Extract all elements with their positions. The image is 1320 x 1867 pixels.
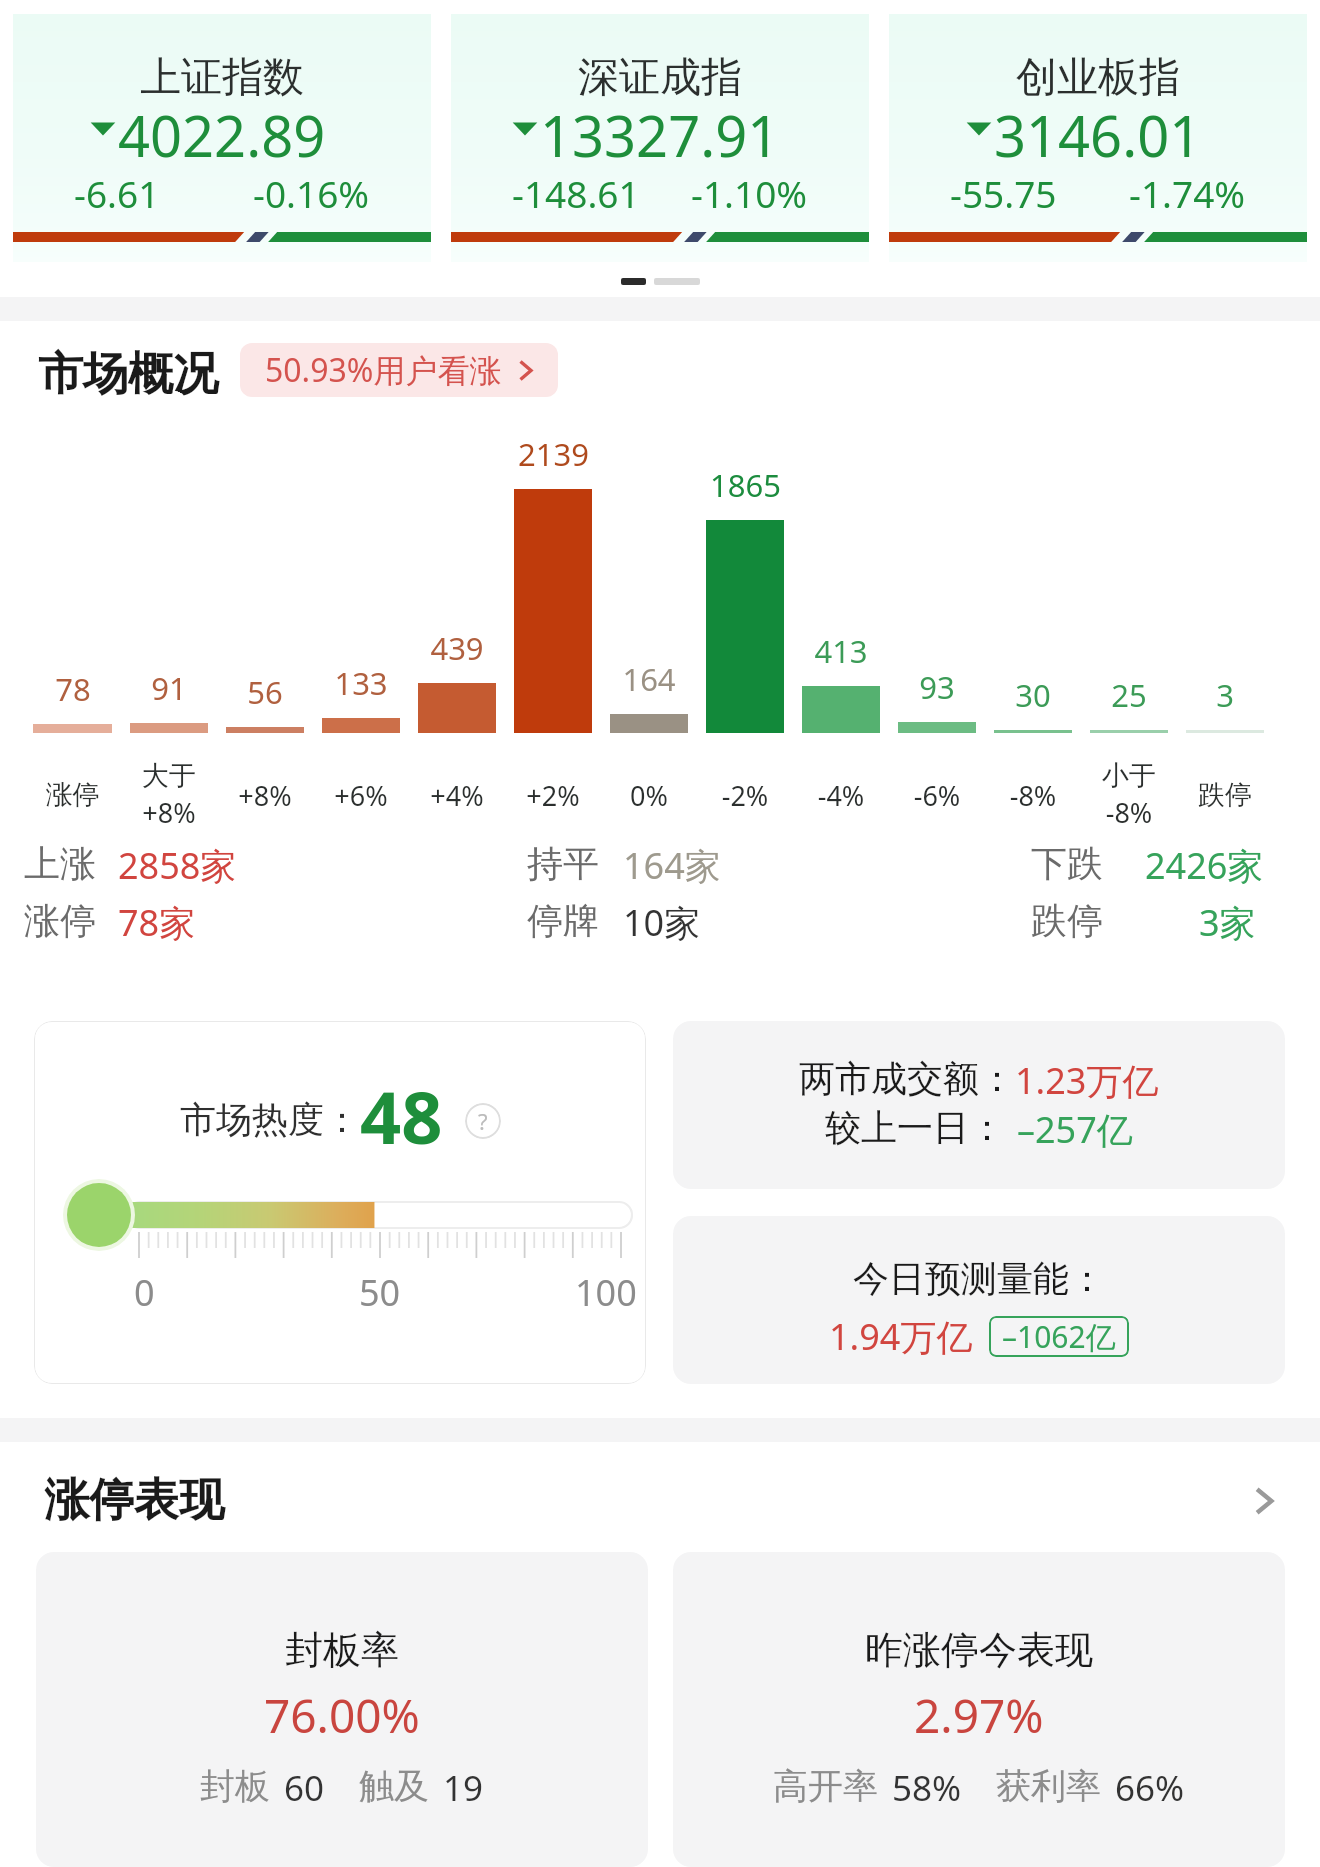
- staticText: -4%: [793, 777, 889, 814]
- staticText: 深证成指: [578, 52, 742, 104]
- staticText: 触及: [359, 1764, 429, 1808]
- staticText: 较上一日：: [825, 1105, 1005, 1150]
- staticText: 19: [443, 1764, 484, 1812]
- staticText: 两市成交额：: [799, 1056, 1015, 1101]
- staticText: 78: [55, 668, 91, 710]
- staticText: 13327.91: [540, 97, 780, 173]
- staticText: +8%: [217, 777, 313, 814]
- button[interactable]: 上证指数: [13, 14, 431, 262]
- staticText: -148.61: [512, 168, 640, 218]
- staticText: 2858家: [118, 841, 237, 890]
- staticText: 持平: [527, 841, 599, 886]
- button[interactable]: 创业板指: [889, 14, 1307, 262]
- button[interactable]: 第2页: [654, 278, 700, 285]
- staticText: 封板率: [285, 1626, 399, 1674]
- staticText: 91: [151, 667, 187, 709]
- staticText: -8%: [985, 777, 1081, 814]
- staticText: 10家: [623, 898, 701, 947]
- staticText: 48: [360, 1067, 443, 1165]
- staticText: 停牌: [527, 898, 599, 943]
- staticText: 0: [134, 1268, 155, 1317]
- staticText: -6.61: [74, 168, 160, 218]
- button[interactable]: 封板率: [36, 1552, 648, 1867]
- staticText: 1.94万亿: [829, 1312, 973, 1361]
- staticText: 跌停: [1031, 898, 1103, 943]
- staticText: +6%: [313, 777, 409, 814]
- button[interactable]: 今日预测量能：: [673, 1216, 1285, 1384]
- staticText: 93: [919, 666, 955, 708]
- staticText: 小于 -8%: [1081, 759, 1177, 831]
- staticText: 76.00%: [264, 1684, 420, 1747]
- staticText: 3家: [1199, 898, 1256, 947]
- staticText: 3146.01: [994, 97, 1202, 173]
- staticText: -1.10%: [691, 168, 808, 218]
- staticText: 今日预测量能：: [853, 1256, 1105, 1301]
- staticText: -0.16%: [253, 168, 370, 218]
- button[interactable]: 市场热度：: [34, 1021, 646, 1384]
- staticText: -1.74%: [1129, 168, 1246, 218]
- staticText: 涨停: [24, 898, 96, 943]
- staticText: 133: [334, 662, 388, 704]
- staticText: 60: [284, 1764, 325, 1812]
- button[interactable]: 市场热度说明: [465, 1103, 501, 1139]
- staticText: 上涨: [24, 841, 96, 886]
- staticText: 跌停: [1177, 778, 1273, 812]
- button[interactable]: 第1页: [621, 278, 646, 285]
- staticText: +4%: [409, 777, 505, 814]
- button[interactable]: 深证成指: [451, 14, 869, 262]
- button[interactable]: 两市成交额：: [673, 1021, 1285, 1189]
- staticText: 涨停: [24, 778, 121, 812]
- staticText: 100: [575, 1268, 637, 1317]
- staticText: 创业板指: [1016, 52, 1180, 104]
- staticText: 164: [622, 658, 676, 700]
- staticText: +2%: [505, 777, 601, 814]
- staticText: 大于 +8%: [121, 759, 217, 831]
- staticText: 413: [814, 630, 868, 672]
- staticText: 56: [247, 671, 283, 713]
- staticText: 昨涨停今表现: [865, 1626, 1093, 1674]
- staticText: 50.93%用户看涨: [265, 348, 502, 392]
- staticText: 1.23万亿: [1015, 1056, 1159, 1105]
- staticText: 封板: [200, 1764, 270, 1808]
- staticText: ?: [478, 1106, 488, 1136]
- staticText: -6%: [889, 777, 985, 814]
- staticText: 25: [1111, 674, 1147, 716]
- staticText: 164家: [623, 841, 721, 890]
- staticText: 2139: [518, 433, 589, 475]
- staticText: 2.97%: [914, 1684, 1044, 1747]
- staticText: –257亿: [1017, 1105, 1133, 1154]
- staticText: 涨停表现: [44, 1472, 224, 1529]
- staticText: 30: [1015, 674, 1051, 716]
- staticText: –1062亿: [1002, 1316, 1116, 1357]
- staticText: 市场概况: [38, 346, 218, 403]
- staticText: -55.75: [950, 168, 1057, 218]
- staticText: 高开率: [773, 1764, 878, 1808]
- staticText: 50: [359, 1268, 401, 1317]
- staticText: 获利率: [996, 1764, 1101, 1808]
- button[interactable]: 昨涨停今表现: [673, 1552, 1285, 1867]
- staticText: 上证指数: [140, 52, 304, 104]
- staticText: 3: [1216, 674, 1234, 716]
- staticText: 2426家: [1145, 841, 1264, 890]
- staticText: 1865: [710, 464, 781, 506]
- staticText: 0%: [601, 777, 697, 814]
- staticText: 78家: [118, 898, 196, 947]
- other: More: [1242, 1480, 1284, 1522]
- staticText: 439: [430, 627, 484, 669]
- button[interactable]: 50.93%用户看涨: [240, 343, 558, 397]
- staticText: -2%: [697, 777, 793, 814]
- staticText: 市场热度：: [180, 1097, 360, 1142]
- staticText: 下跌: [1031, 841, 1103, 886]
- button[interactable]: 涨停表现: [0, 1442, 1320, 1552]
- staticText: 58%: [892, 1764, 962, 1812]
- staticText: 4022.89: [118, 97, 326, 173]
- staticText: 66%: [1115, 1764, 1185, 1812]
